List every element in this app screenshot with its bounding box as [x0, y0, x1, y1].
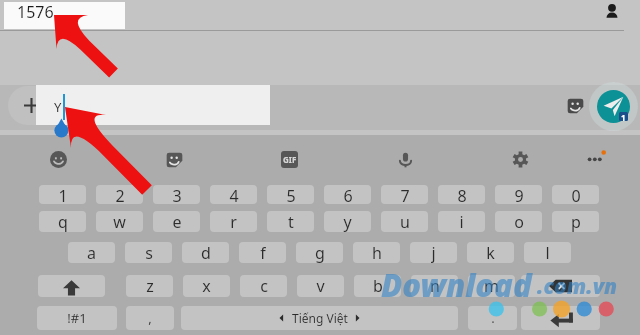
button[interactable]: e: [153, 211, 200, 232]
staticText: 9: [514, 185, 524, 204]
button[interactable]: Stickers: [166, 151, 183, 168]
staticText: Tiếng Việt: [292, 310, 348, 326]
button[interactable]: Stickers: [567, 97, 584, 114]
button[interactable]: !#1: [37, 306, 117, 330]
staticText: y: [343, 211, 352, 232]
other: Text selection handle: [54, 118, 70, 134]
staticText: 1: [58, 185, 68, 204]
button[interactable]: ,: [126, 306, 174, 330]
button[interactable]: h: [353, 242, 400, 263]
staticText: b: [373, 275, 383, 297]
button[interactable]: 9: [495, 185, 542, 204]
staticText: k: [486, 242, 495, 263]
staticText: n: [430, 275, 440, 297]
staticText: s: [145, 242, 153, 263]
button[interactable]: w: [96, 211, 143, 232]
staticText: 6: [343, 185, 353, 204]
button[interactable]: x: [183, 275, 230, 297]
staticText: GIF: [283, 154, 297, 165]
button[interactable]: 8: [438, 185, 485, 204]
button[interactable]: 0: [552, 185, 599, 204]
staticText: !#1: [67, 309, 87, 327]
button[interactable]: Enter: [521, 306, 600, 330]
staticText: .: [491, 309, 495, 327]
button[interactable]: j: [410, 242, 457, 263]
staticText: 5: [286, 185, 296, 204]
staticText: 2: [115, 185, 125, 204]
button[interactable]: r: [210, 211, 257, 232]
button[interactable]: Voice input: [397, 151, 414, 168]
button[interactable]: GIF: [281, 151, 298, 168]
button[interactable]: y: [324, 211, 371, 232]
button[interactable]: b: [354, 275, 401, 297]
button[interactable]: Backspace: [521, 275, 600, 297]
button[interactable]: 2: [96, 185, 143, 204]
staticText: e: [172, 211, 182, 232]
staticText: v: [316, 275, 325, 297]
staticText: 3: [172, 185, 182, 204]
button[interactable]: .: [468, 306, 517, 330]
button[interactable]: Settings: [512, 151, 529, 168]
staticText: ,: [148, 309, 152, 327]
staticText: u: [400, 211, 410, 232]
button[interactable]: u: [381, 211, 428, 232]
button[interactable]: i: [438, 211, 485, 232]
button[interactable]: d: [182, 242, 229, 263]
button[interactable]: 1576: [4, 2, 125, 29]
staticText: 1: [621, 112, 626, 121]
staticText: z: [146, 275, 154, 297]
staticText: g: [315, 242, 325, 263]
button[interactable]: p: [552, 211, 599, 232]
staticText: a: [87, 242, 96, 263]
staticText: w: [113, 211, 126, 232]
staticText: p: [571, 211, 581, 232]
staticText: o: [514, 211, 524, 232]
button[interactable]: q: [39, 211, 86, 232]
button[interactable]: k: [467, 242, 514, 263]
button[interactable]: a: [68, 242, 115, 263]
staticText: 0: [571, 185, 581, 204]
button[interactable]: v: [297, 275, 344, 297]
button[interactable]: Emoji: [50, 151, 67, 168]
staticText: 8: [457, 185, 467, 204]
button[interactable]: g: [296, 242, 343, 263]
button[interactable]: l: [524, 242, 571, 263]
button[interactable]: z: [126, 275, 173, 297]
staticText: d: [201, 242, 211, 263]
staticText: j: [431, 242, 436, 263]
staticText: q: [58, 211, 68, 232]
staticText: c: [260, 275, 268, 297]
staticText: l: [545, 242, 550, 263]
staticText: .com.vn: [537, 272, 618, 301]
button[interactable]: Account: [602, 1, 622, 21]
staticText: x: [202, 275, 211, 297]
button[interactable]: 7: [381, 185, 428, 204]
button[interactable]: Shift: [38, 275, 105, 297]
button[interactable]: 5: [267, 185, 314, 204]
button[interactable]: More options: [582, 148, 608, 174]
button[interactable]: Send: [597, 90, 630, 123]
staticText: 4: [229, 185, 239, 204]
staticText: m: [484, 275, 499, 297]
button[interactable]: t: [267, 211, 314, 232]
button[interactable]: Y: [36, 85, 270, 125]
button[interactable]: c: [240, 275, 287, 297]
staticText: Y: [54, 98, 62, 116]
staticText: 1576: [17, 1, 54, 23]
staticText: r: [230, 211, 237, 232]
button[interactable]: Add attachment: [8, 86, 48, 125]
staticText: h: [372, 242, 382, 263]
staticText: Download: [381, 264, 532, 306]
staticText: t: [288, 211, 294, 232]
button[interactable]: 1: [39, 185, 86, 204]
button[interactable]: o: [495, 211, 542, 232]
button[interactable]: 4: [210, 185, 257, 204]
button[interactable]: s: [125, 242, 172, 263]
button[interactable]: 3: [153, 185, 200, 204]
button[interactable]: 6: [324, 185, 371, 204]
staticText: 7: [400, 185, 410, 204]
button[interactable]: f: [239, 242, 286, 263]
button[interactable]: m: [468, 275, 515, 297]
button[interactable]: Space, Tiếng Việt: [181, 306, 458, 330]
button[interactable]: n: [411, 275, 458, 297]
